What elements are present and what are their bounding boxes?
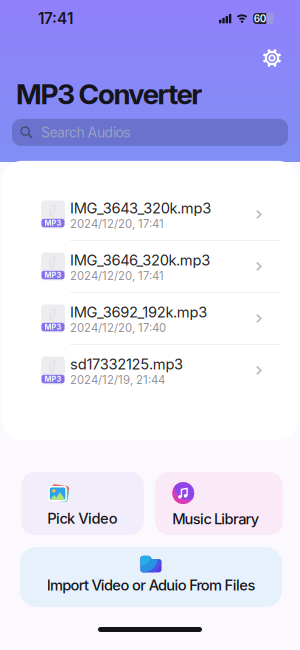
staticText: MP3 Converter bbox=[16, 77, 202, 111]
staticText: Search Audios bbox=[41, 124, 130, 141]
staticText: MP3 bbox=[44, 375, 61, 383]
button[interactable]: MP3 bbox=[2, 345, 298, 396]
button[interactable]: MP3 bbox=[2, 293, 298, 344]
button[interactable]: Import Video or Aduio From Files bbox=[20, 547, 282, 607]
staticText: sd17332125.mp3 bbox=[70, 355, 183, 373]
staticText: 2024/12/20, 17:41 bbox=[70, 217, 164, 231]
staticText: 60 bbox=[254, 12, 267, 25]
staticText: Pick Video bbox=[47, 510, 118, 527]
staticText: 2024/12/20, 17:41 bbox=[70, 269, 164, 283]
button[interactable]: Pick Video bbox=[21, 472, 144, 535]
button[interactable]: MP3 bbox=[2, 241, 298, 292]
staticText: MP3 bbox=[44, 219, 61, 227]
staticText: MP3 bbox=[44, 271, 61, 279]
staticText: MP3 bbox=[44, 323, 61, 331]
staticText: IMG_3646_320k.mp3 bbox=[70, 251, 210, 269]
staticText: Music Library bbox=[172, 510, 259, 528]
staticText: IMG_3643_320k.mp3 bbox=[70, 199, 211, 217]
staticText: IMG_3692_192k.mp3 bbox=[70, 303, 207, 321]
button[interactable]: Search Audios bbox=[12, 119, 288, 146]
staticText: 17:41 bbox=[38, 9, 73, 28]
staticText: 2024/12/20, 17:40 bbox=[70, 321, 166, 335]
button[interactable]: Music Library bbox=[155, 472, 283, 535]
button[interactable]: Settings bbox=[262, 48, 282, 68]
button[interactable]: MP3 bbox=[2, 189, 298, 240]
staticText: 2024/12/19, 21:44 bbox=[70, 373, 165, 387]
staticText: Import Video or Aduio From Files bbox=[47, 576, 255, 594]
